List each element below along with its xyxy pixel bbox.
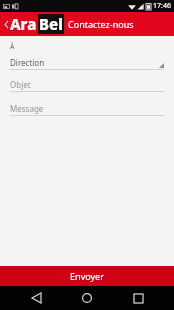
staticText: Direction (10, 57, 45, 68)
button[interactable]: Back (2, 12, 10, 36)
button[interactable]: Home (72, 286, 102, 310)
staticText: 17:46 (153, 1, 171, 11)
button[interactable]: Back (21, 286, 51, 310)
staticText: Bel (39, 14, 63, 34)
button[interactable]: Message (10, 101, 164, 116)
button[interactable]: Objet (10, 77, 164, 92)
staticText: Objet (10, 79, 31, 90)
staticText: À (10, 42, 15, 52)
staticText: Ara (10, 14, 37, 34)
staticText: Message (10, 103, 44, 114)
button[interactable]: Recent apps (123, 286, 153, 310)
button[interactable]: Envoyer (0, 266, 174, 286)
staticText: Envoyer (70, 270, 104, 282)
staticText: Contactez-nous (68, 18, 134, 30)
button[interactable]: Direction (10, 55, 164, 70)
